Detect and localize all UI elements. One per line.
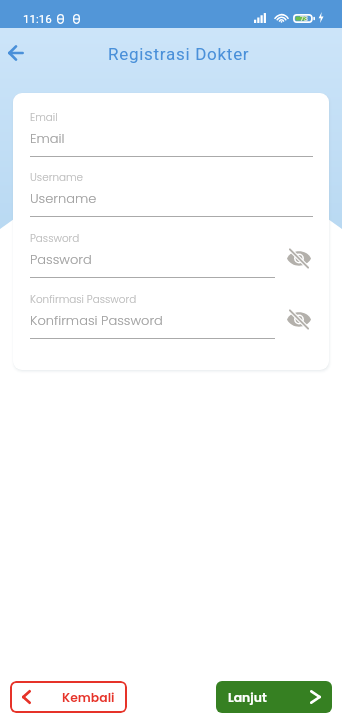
staticText: Kembali: [62, 689, 115, 706]
button[interactable]: Lanjut: [216, 681, 332, 713]
staticText: Email: [30, 129, 65, 147]
button[interactable]: Toggle password visibility: [285, 305, 313, 333]
staticText: Username: [30, 189, 97, 207]
staticText: Registrasi Dokter: [108, 44, 250, 64]
staticText: 11:16: [23, 12, 52, 25]
button[interactable]: Kembali: [10, 681, 127, 713]
staticText: Username: [30, 170, 84, 185]
staticText: Konfirmasi Password: [30, 292, 137, 307]
staticText: 73: [300, 15, 308, 23]
staticText: Email: [30, 110, 58, 125]
staticText: Konfirmasi Password: [30, 311, 163, 329]
button[interactable]: Back: [0, 36, 33, 70]
staticText: Lanjut: [228, 689, 267, 706]
staticText: Password: [30, 231, 80, 246]
button[interactable]: Toggle password visibility: [285, 244, 313, 272]
staticText: Password: [30, 250, 92, 268]
